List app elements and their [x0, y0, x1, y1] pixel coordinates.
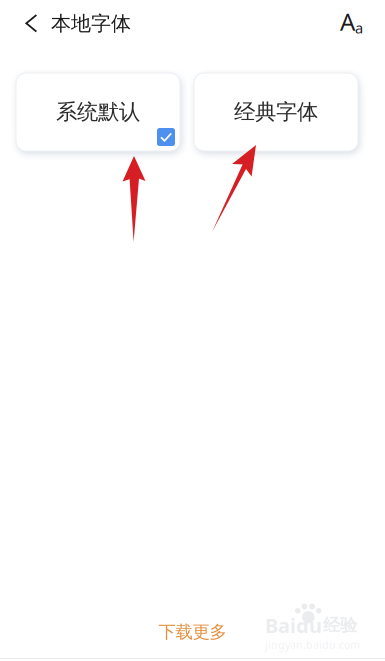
button[interactable]: Back: [0, 0, 51, 47]
staticText: 经验: [323, 615, 357, 636]
button[interactable]: Text size: [340, 0, 385, 47]
staticText: 系统默认: [56, 99, 140, 125]
staticText: 本地字体: [51, 11, 131, 36]
button[interactable]: 系统默认: [16, 73, 180, 151]
staticText: a: [355, 18, 363, 37]
staticText: Baidu: [265, 612, 322, 639]
staticText: A: [340, 6, 355, 37]
button[interactable]: 下载更多: [0, 611, 385, 653]
staticText: 下载更多: [158, 621, 226, 643]
button[interactable]: 经典字体: [194, 73, 358, 151]
staticText: jingyan.baidu.com: [265, 638, 360, 652]
staticText: 经典字体: [234, 99, 318, 125]
